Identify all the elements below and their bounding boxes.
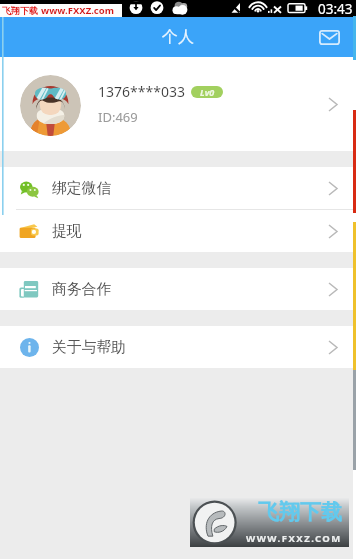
staticText: 提现: [52, 222, 328, 241]
staticText: 商务合作: [52, 280, 328, 299]
staticText: 绑定微信: [52, 179, 328, 198]
staticText: 飞翔下载: [2, 5, 38, 16]
staticText: Lv0: [200, 86, 215, 98]
button[interactable]: 关于与帮助: [0, 326, 356, 368]
button[interactable]: 1376****033: [0, 57, 356, 151]
button[interactable]: 绑定微信: [0, 167, 356, 209]
staticText: 1376****033: [98, 82, 185, 101]
staticText: ID:469: [98, 108, 138, 126]
staticText: www.FXXZ.com: [41, 4, 114, 17]
staticText: 飞翔下载: [258, 499, 342, 525]
button[interactable]: Messages: [313, 21, 345, 53]
staticText: 个人: [162, 27, 194, 47]
button[interactable]: 商务合作: [0, 268, 356, 310]
staticText: WWW.FXXZ.COM: [246, 532, 342, 545]
button[interactable]: 提现: [0, 210, 356, 252]
staticText: 关于与帮助: [52, 338, 328, 357]
staticText: 03:43: [318, 0, 353, 17]
